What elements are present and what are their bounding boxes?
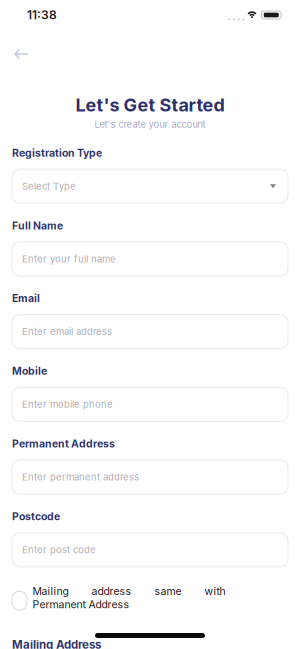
button[interactable]: Enter permanent address [12,460,288,494]
staticText: Mobile [12,365,47,377]
button[interactable]: Mailing [12,585,288,611]
staticText: Mailing [32,585,68,597]
staticText: Select Type [22,180,76,192]
staticText: same [154,585,181,597]
staticText: 11:38 [27,8,57,22]
button[interactable]: Select Type [12,169,288,203]
staticText: Enter post code [22,544,96,555]
staticText: with [204,585,225,597]
staticText: Enter email address [22,326,112,337]
staticText: Let's Get Started [75,94,224,116]
button[interactable]: Enter post code [12,533,288,567]
staticText: Enter mobile phone [22,399,113,410]
staticText: Mailing Address [12,638,101,649]
button[interactable]: Enter mobile phone [12,387,288,421]
button[interactable]: Enter email address [12,315,288,349]
staticText: Enter permanent address [22,471,139,483]
staticText: Postcode [12,510,60,523]
staticText: Registration Type [12,146,102,159]
button[interactable]: Back [0,49,29,59]
staticText: Permanent Address [12,437,115,450]
staticText: Enter your full name [22,253,116,265]
staticText: address [91,585,131,597]
button[interactable]: Enter your full name [12,242,288,276]
staticText: Permanent Address [32,598,129,611]
staticText: Let's create your account [94,119,205,130]
staticText: Email [12,292,40,305]
staticText: Full Name [12,219,63,232]
